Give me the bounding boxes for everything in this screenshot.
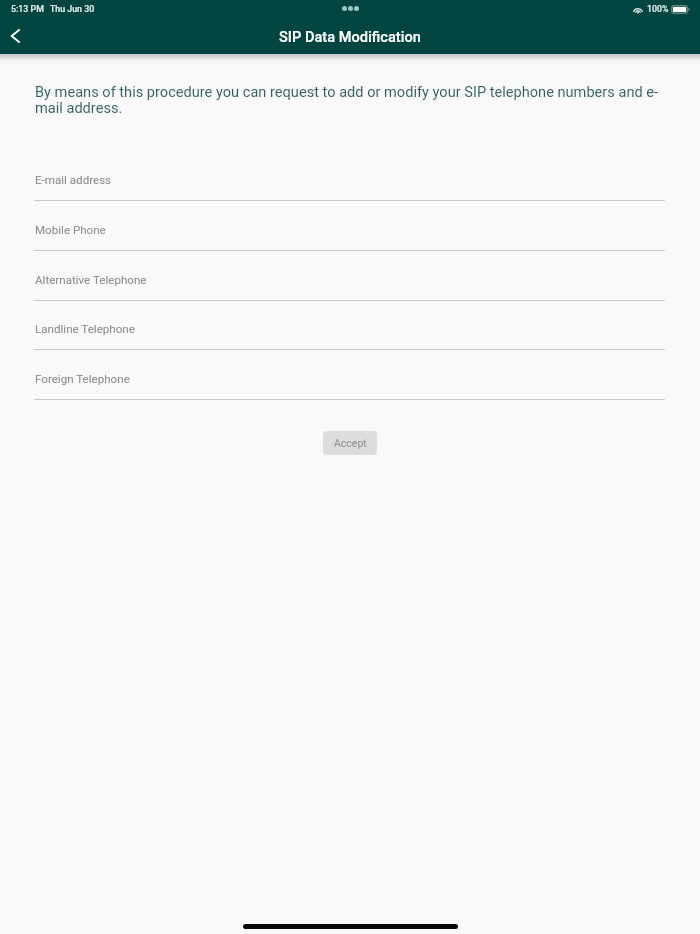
staticText: Thu Jun 30 [50, 4, 95, 14]
staticText: E-mail address [35, 173, 112, 187]
staticText: By means of this procedure you can reque… [35, 84, 667, 116]
staticText: 100% [647, 4, 669, 14]
staticText: Mobile Phone [35, 223, 106, 237]
button[interactable]: Accept [323, 431, 377, 455]
staticText: 5:13 PM [11, 4, 44, 14]
button[interactable]: Landline Telephone [34, 313, 666, 349]
button[interactable]: Foreign Telephone [34, 363, 666, 399]
button[interactable]: Back [0, 21, 30, 51]
staticText: Foreign Telephone [35, 372, 130, 386]
button[interactable]: Mobile Phone [34, 214, 666, 250]
staticText: Accept [334, 437, 367, 449]
button[interactable]: E-mail address [34, 164, 666, 200]
staticText: Landline Telephone [35, 322, 135, 336]
staticText: SIP Data Modification [279, 28, 421, 45]
button[interactable]: Alternative Telephone [34, 264, 666, 300]
staticText: Alternative Telephone [35, 273, 147, 287]
